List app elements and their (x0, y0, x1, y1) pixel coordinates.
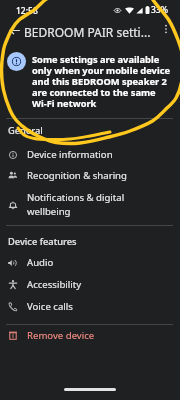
button[interactable]: Voice calls (0, 296, 180, 317)
button[interactable]: More options (155, 18, 177, 40)
staticText: BEDROOM PAIR setti... (24, 24, 151, 40)
staticText: Remove device (27, 329, 95, 342)
button[interactable]: Remove device (0, 325, 180, 346)
staticText: Recognition & sharing (27, 169, 127, 182)
button[interactable]: Notifications & digital wellbeing (0, 188, 180, 220)
staticText: Accessibility (27, 278, 82, 291)
staticText: General (8, 124, 43, 137)
button[interactable]: Recognition & sharing (0, 165, 180, 186)
staticText: Audio (27, 256, 54, 269)
staticText: Voice calls (27, 300, 73, 313)
staticText: Device features (8, 235, 77, 248)
button[interactable]: Audio (0, 252, 180, 273)
button[interactable]: Device information (0, 144, 180, 165)
staticText: 33% (151, 4, 168, 16)
button[interactable]: Accessibility (0, 274, 180, 295)
staticText: 12:58 (16, 5, 38, 17)
staticText: Device information (27, 148, 113, 161)
staticText: Some settings are available only when yo… (32, 53, 172, 110)
staticText: Notifications & digital wellbeing (27, 191, 125, 217)
button[interactable]: Back (2, 18, 26, 42)
